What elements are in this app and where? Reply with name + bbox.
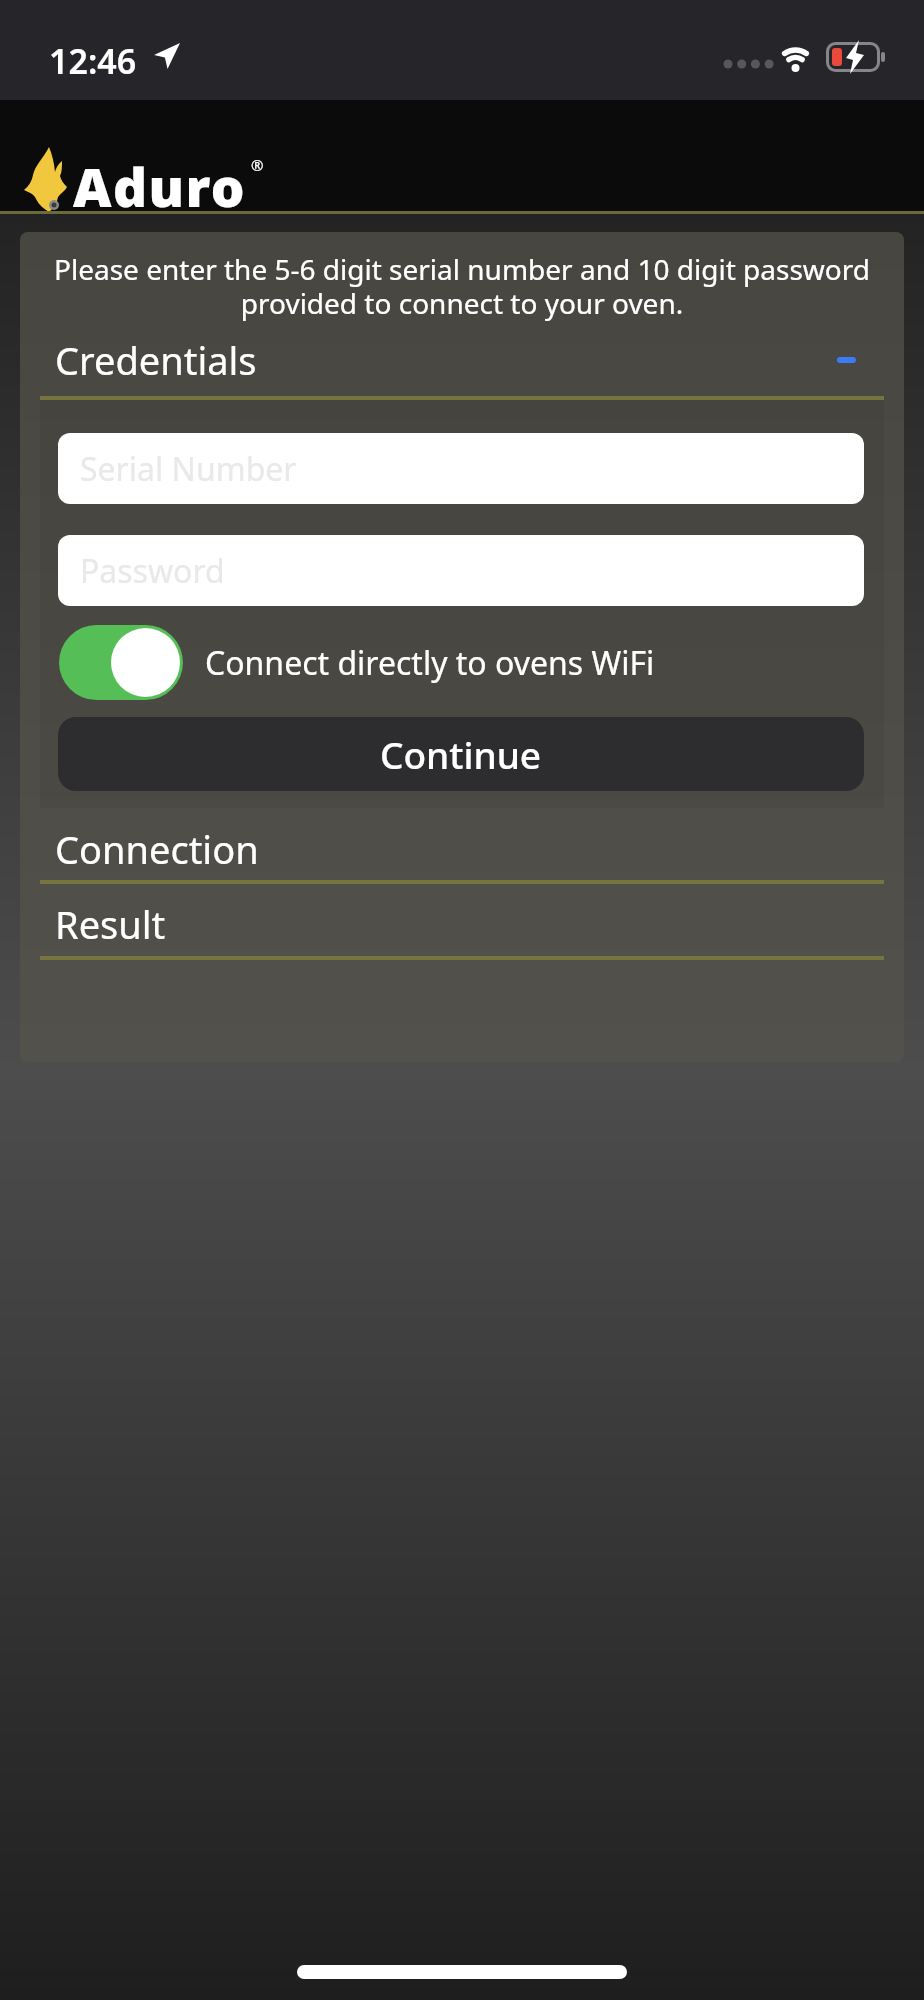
staticText: Result (55, 898, 166, 950)
button[interactable]: Credentials (20, 328, 904, 392)
staticText: Continue (380, 729, 542, 779)
button[interactable]: Password (58, 535, 864, 606)
staticText: Serial Number (80, 447, 297, 491)
staticText: Aduro (73, 150, 247, 222)
staticText: 12:46 (49, 38, 137, 84)
button[interactable]: Serial Number (58, 433, 864, 504)
staticText: Please enter the 5-6 digit serial number… (54, 250, 870, 323)
staticText: Credentials (55, 334, 257, 386)
button[interactable]: Result (20, 892, 904, 956)
button[interactable]: Connection (20, 818, 904, 880)
button[interactable]: Continue (58, 717, 864, 791)
button[interactable] (59, 625, 183, 700)
staticText: Connect directly to ovens WiFi (205, 641, 655, 685)
staticText: ® (251, 155, 264, 175)
staticText: Connection (55, 823, 259, 875)
staticText: Password (80, 549, 225, 593)
